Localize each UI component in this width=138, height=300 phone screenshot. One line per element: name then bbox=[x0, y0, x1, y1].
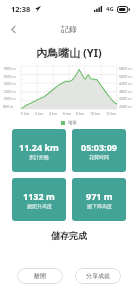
staticText: 1800 m bbox=[3, 66, 16, 71]
staticText: 離開 bbox=[34, 272, 46, 280]
staticText: 1600 m bbox=[3, 74, 16, 79]
staticText: 05:03:09 bbox=[81, 141, 117, 153]
staticText: 分享成就 bbox=[86, 272, 110, 280]
staticText: 3800 m bbox=[119, 89, 132, 94]
staticText: 記錄 bbox=[61, 24, 77, 34]
staticText: 儲存完成 bbox=[0, 230, 138, 241]
staticText: 1132 m bbox=[23, 190, 55, 202]
staticText: 5800 m bbox=[119, 66, 132, 71]
staticText: 5000 m bbox=[119, 74, 132, 79]
staticText: 2 km bbox=[35, 111, 44, 116]
staticText: 800 m bbox=[3, 104, 14, 109]
staticText: 內鳥嘴山 (YI) bbox=[0, 45, 138, 60]
staticText: 0 km bbox=[21, 111, 30, 116]
staticText: 10 km bbox=[90, 111, 101, 116]
staticText: 6 km bbox=[63, 111, 72, 116]
staticText: 12:38 bbox=[11, 4, 31, 14]
button[interactable]: Back bbox=[3, 19, 23, 39]
staticText: 4 km bbox=[49, 111, 58, 116]
staticText: 1200 m bbox=[3, 89, 16, 94]
staticText: 總爬升高度 bbox=[27, 203, 52, 209]
staticText: 4G bbox=[106, 5, 114, 13]
staticText: 11.24 km bbox=[19, 141, 59, 153]
staticText: 總下降高度 bbox=[87, 203, 112, 209]
staticText: 花費時間 bbox=[89, 154, 109, 160]
staticText: 海拔 bbox=[68, 120, 77, 126]
staticText: 1400 m bbox=[3, 81, 16, 86]
button[interactable]: 11.24 km bbox=[12, 129, 66, 172]
button[interactable]: 離開 bbox=[17, 268, 63, 284]
staticText: 4400 m bbox=[119, 81, 132, 86]
button[interactable]: 05:03:09 bbox=[72, 129, 126, 172]
staticText: 12 km bbox=[106, 111, 117, 116]
staticText: 2600 m bbox=[119, 104, 132, 109]
staticText: 1000 m bbox=[3, 96, 16, 101]
button[interactable]: 分享成就 bbox=[75, 268, 121, 284]
button[interactable]: 1132 m bbox=[12, 178, 66, 221]
staticText: 8 km bbox=[76, 111, 85, 116]
staticText: 971 m bbox=[86, 190, 113, 202]
staticText: 累計距離 bbox=[29, 154, 49, 160]
staticText: 3200 m bbox=[119, 96, 132, 101]
button[interactable]: 971 m bbox=[72, 178, 126, 221]
